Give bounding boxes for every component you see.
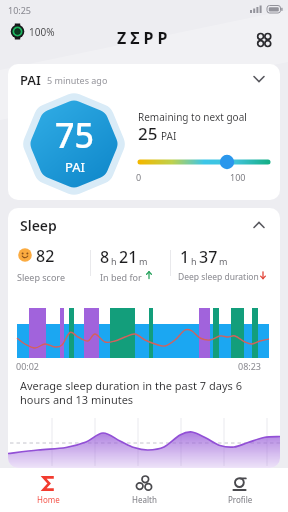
button[interactable] bbox=[138, 154, 270, 170]
staticText: Deep sleep duration bbox=[178, 271, 259, 283]
staticText: h bbox=[111, 255, 117, 267]
staticText: In bed for bbox=[100, 271, 142, 283]
staticText: PAI bbox=[20, 71, 41, 89]
staticText: Health bbox=[132, 494, 157, 505]
staticText: 0 bbox=[136, 171, 142, 183]
button[interactable]: 100% bbox=[10, 23, 55, 40]
button[interactable] bbox=[256, 32, 272, 48]
staticText: Sleep score bbox=[17, 271, 65, 283]
staticText: Remaining to next goal bbox=[138, 110, 247, 124]
button[interactable] bbox=[252, 220, 266, 230]
staticText: Profile bbox=[228, 494, 253, 505]
button[interactable]: Home bbox=[0, 468, 96, 512]
staticText: h bbox=[191, 255, 197, 267]
staticText: 100 bbox=[230, 171, 246, 183]
staticText: 1 bbox=[180, 246, 190, 268]
staticText: PAI bbox=[161, 129, 177, 143]
staticText: PAI bbox=[65, 158, 85, 176]
button[interactable]: PAI bbox=[8, 64, 280, 200]
staticText: 75 bbox=[55, 112, 94, 158]
staticText: 82 bbox=[36, 245, 55, 267]
staticText: m bbox=[139, 255, 148, 267]
button[interactable] bbox=[252, 74, 266, 84]
staticText: 00:02 bbox=[16, 360, 40, 372]
staticText: m bbox=[219, 255, 228, 267]
button[interactable]: Profile bbox=[192, 468, 288, 512]
staticText: 8 bbox=[100, 246, 110, 268]
button[interactable]: Health bbox=[96, 468, 192, 512]
staticText: Home bbox=[37, 494, 60, 505]
staticText: 37 bbox=[199, 246, 218, 268]
button[interactable]: Sleep bbox=[8, 208, 280, 468]
staticText: 10:25 bbox=[8, 4, 32, 16]
staticText: 21 bbox=[119, 246, 138, 268]
staticText: ZΣPP bbox=[117, 27, 172, 49]
staticText: Average sleep duration in the past 7 day… bbox=[20, 378, 260, 407]
staticText: Sleep bbox=[20, 216, 57, 235]
staticText: 100% bbox=[29, 25, 55, 39]
staticText: 25 bbox=[138, 122, 158, 145]
staticText: 5 minutes ago bbox=[47, 74, 108, 86]
staticText: 08:23 bbox=[238, 360, 262, 372]
